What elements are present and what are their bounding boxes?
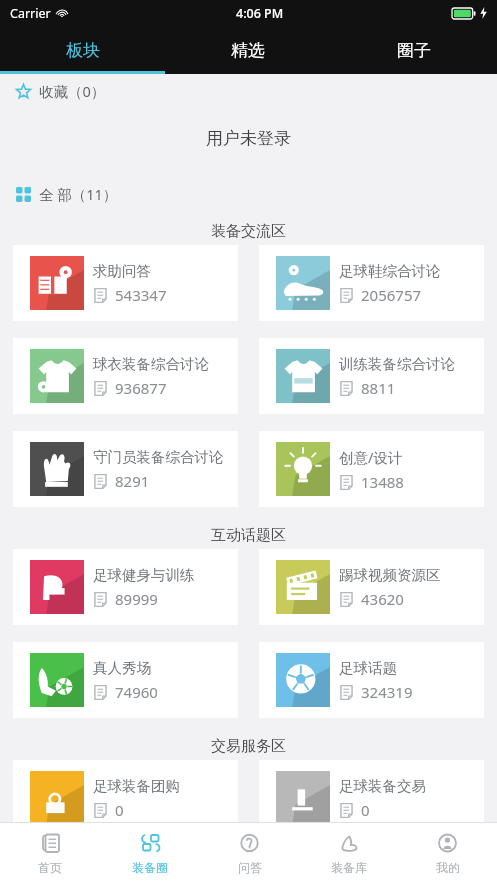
staticText: 89999 <box>115 589 158 609</box>
button[interactable]: 踢球视频资源区 <box>259 549 484 625</box>
staticText: 互动话题区 <box>211 526 286 545</box>
button[interactable]: 足球装备交易 <box>259 760 484 836</box>
staticText: 543347 <box>115 285 167 305</box>
button[interactable]: 我的 <box>398 823 497 883</box>
button[interactable]: 问答 <box>200 823 299 883</box>
staticText: 足球鞋综合讨论 <box>339 262 441 280</box>
staticText: 936877 <box>115 378 167 398</box>
staticText: 问答 <box>238 860 262 875</box>
staticText: 324319 <box>361 682 413 702</box>
staticText: 4:06 PM <box>236 5 284 22</box>
button[interactable]: 足球健身与训练 <box>13 549 238 625</box>
staticText: 收藏（0） <box>39 81 106 101</box>
button[interactable]: 收藏（0） <box>16 80 497 102</box>
staticText: 我的 <box>436 860 460 875</box>
staticText: 74960 <box>115 682 158 702</box>
button[interactable]: 板块 <box>0 26 165 74</box>
button[interactable]: 装备圈 <box>100 823 200 883</box>
staticText: 2056757 <box>361 285 422 305</box>
staticText: 8291 <box>115 471 150 491</box>
button[interactable]: 圈子 <box>331 26 497 74</box>
staticText: 守门员装备综合讨论 <box>93 448 224 466</box>
staticText: 创意/设计 <box>339 447 403 467</box>
staticText: 13488 <box>361 472 404 492</box>
staticText: 球衣装备综合讨论 <box>93 355 209 373</box>
staticText: 真人秀场 <box>93 659 151 677</box>
staticText: 全 部（11） <box>39 184 118 204</box>
button[interactable]: 全 部（11） <box>16 183 497 205</box>
staticText: 0 <box>361 800 370 820</box>
button[interactable]: 首页 <box>0 823 100 883</box>
staticText: 0 <box>115 800 124 820</box>
button[interactable]: 训练装备综合讨论 <box>259 338 484 414</box>
staticText: 8811 <box>361 378 396 398</box>
staticText: Carrier <box>10 5 51 22</box>
staticText: 足球话题 <box>339 659 397 677</box>
button[interactable]: 足球鞋综合讨论 <box>259 245 484 321</box>
staticText: 踢球视频资源区 <box>339 566 441 584</box>
button[interactable]: 守门员装备综合讨论 <box>13 431 238 507</box>
staticText: 训练装备综合讨论 <box>339 355 455 373</box>
button[interactable]: 足球装备团购 <box>13 760 238 836</box>
staticText: 圈子 <box>397 40 431 61</box>
staticText: 用户未登录 <box>206 128 291 149</box>
button[interactable]: 求助问答 <box>13 245 238 321</box>
staticText: 求助问答 <box>93 262 151 280</box>
staticText: 足球装备团购 <box>93 777 180 795</box>
staticText: 板块 <box>66 40 100 61</box>
staticText: 足球健身与训练 <box>93 566 195 584</box>
button[interactable]: 精选 <box>165 26 331 74</box>
staticText: 首页 <box>38 860 62 875</box>
staticText: 43620 <box>361 589 404 609</box>
staticText: 精选 <box>231 40 265 61</box>
staticText: 装备库 <box>331 860 367 875</box>
staticText: 交易服务区 <box>211 737 286 756</box>
button[interactable]: 足球话题 <box>259 642 484 718</box>
staticText: 足球装备交易 <box>339 777 426 795</box>
button[interactable]: 创意/设计 <box>259 431 484 507</box>
button[interactable]: 真人秀场 <box>13 642 238 718</box>
staticText: 装备圈 <box>132 860 168 875</box>
staticText: 装备交流区 <box>211 222 286 241</box>
button[interactable]: 装备库 <box>299 823 398 883</box>
button[interactable]: 球衣装备综合讨论 <box>13 338 238 414</box>
